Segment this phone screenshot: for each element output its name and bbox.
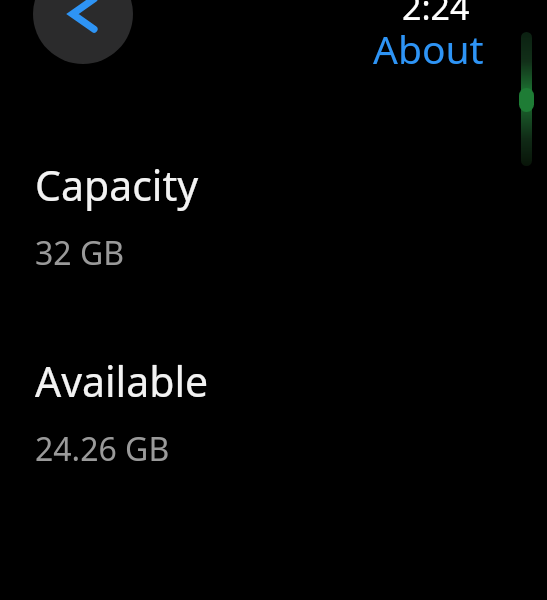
staticText: About bbox=[373, 22, 484, 75]
button[interactable]: About bbox=[373, 22, 484, 75]
staticText: 2:24 bbox=[402, 0, 470, 30]
button[interactable]: Capacity bbox=[35, 157, 199, 213]
button[interactable]: Available bbox=[35, 353, 209, 409]
button[interactable]: Back bbox=[33, 0, 133, 64]
staticText: 24.26 GB bbox=[35, 427, 170, 471]
staticText: 32 GB bbox=[35, 231, 125, 275]
